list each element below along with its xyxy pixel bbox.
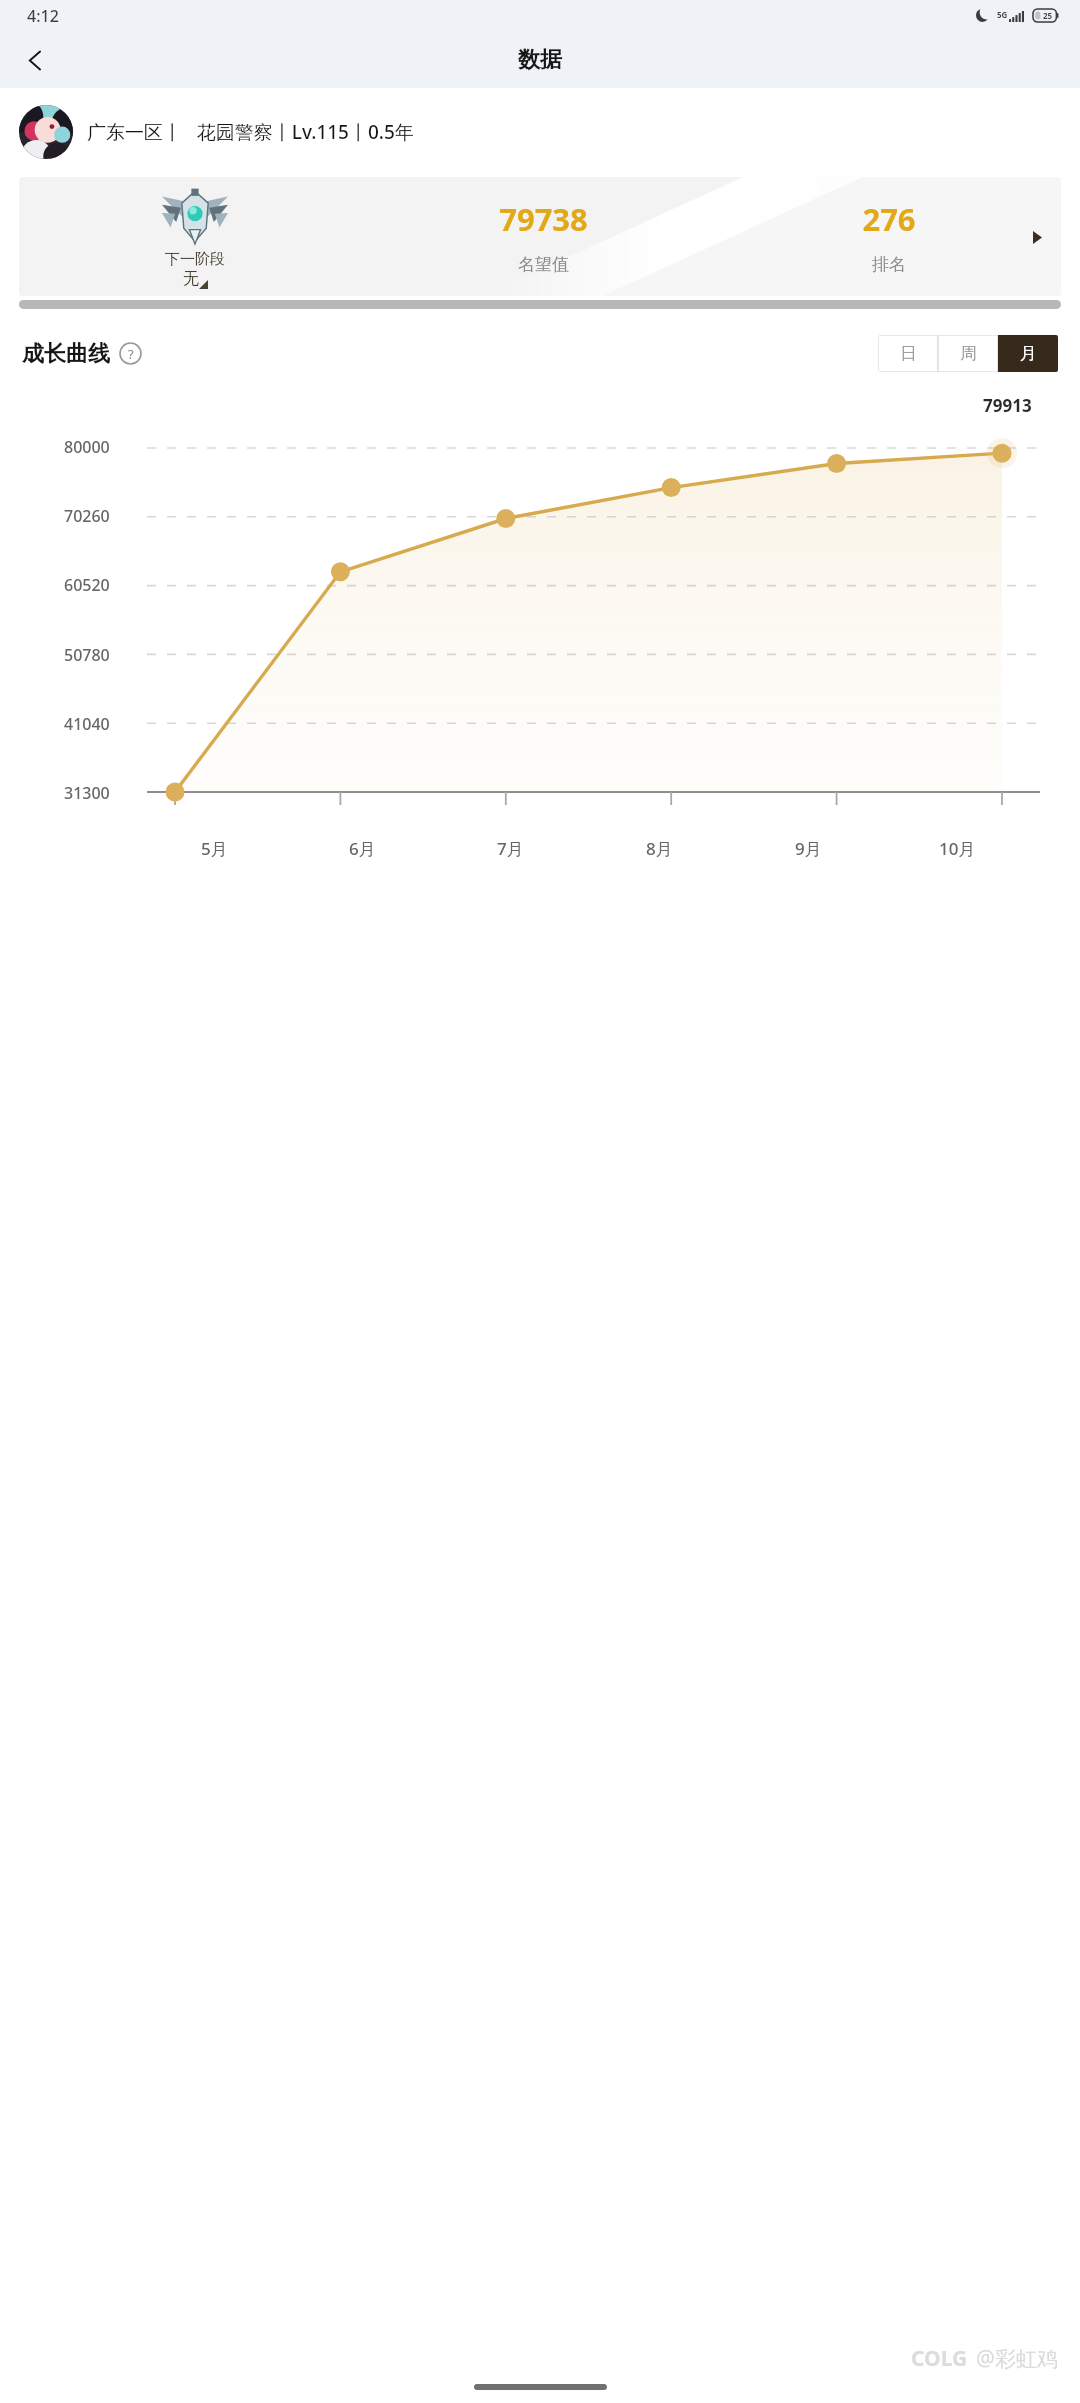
staticText: 成长曲线 — [22, 340, 110, 368]
staticText: 下一阶段 — [165, 250, 225, 269]
staticText: 8月 — [646, 837, 673, 860]
staticText: 79738 — [499, 198, 588, 240]
staticText: 25 — [1043, 10, 1053, 21]
staticText: 6月 — [349, 837, 376, 860]
button[interactable]: 79738 — [371, 177, 716, 296]
staticText: 无 — [183, 269, 199, 289]
button[interactable]: 周 — [938, 335, 998, 372]
staticText: 5G — [997, 9, 1008, 20]
staticText: 70260 — [64, 505, 110, 527]
button[interactable]: 月 — [998, 335, 1058, 372]
staticText: 排名 — [872, 254, 906, 275]
staticText: 79913 — [983, 394, 1032, 417]
button[interactable]: More stats — [1025, 225, 1049, 249]
staticText: 60520 — [64, 574, 110, 596]
staticText: 月 — [1020, 343, 1037, 364]
button[interactable]: 276 — [716, 177, 1061, 296]
staticText: 广东一区丨 花园警察丨Lv.115丨0.5年 — [87, 119, 414, 145]
staticText: 31300 — [64, 782, 110, 804]
staticText: 7月 — [497, 837, 524, 860]
button[interactable]: Back — [12, 37, 58, 83]
button[interactable]: 广东一区丨 花园警察丨Lv.115丨0.5年 — [19, 105, 1061, 159]
staticText: 9月 — [795, 837, 822, 860]
staticText: COLG — [911, 2344, 968, 2373]
button[interactable]: 下一阶段 — [19, 177, 1061, 296]
staticText: 41040 — [64, 713, 110, 735]
staticText: 数据 — [518, 46, 562, 74]
button[interactable]: Help — [119, 342, 142, 365]
staticText: ? — [128, 345, 134, 363]
staticText: 10月 — [939, 837, 976, 860]
staticText: 276 — [862, 198, 916, 240]
staticText: 周 — [960, 343, 977, 364]
staticText: 5月 — [201, 837, 228, 860]
staticText: 名望值 — [518, 254, 569, 275]
staticText: 50780 — [64, 644, 110, 666]
staticText: @彩虹鸡 — [976, 2344, 1058, 2373]
button[interactable]: 日 — [878, 335, 938, 372]
staticText: 80000 — [64, 436, 110, 458]
staticText: 4:12 — [27, 5, 59, 27]
staticText: 日 — [900, 343, 917, 364]
